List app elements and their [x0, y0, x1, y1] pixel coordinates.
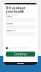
staticText: Date of birth [6, 23, 13, 25]
button[interactable]: Continue [6, 52, 35, 57]
staticText: Full name [6, 16, 12, 18]
staticText: Continue [13, 52, 27, 56]
staticText: It only takes a minute. [6, 14, 18, 16]
staticText: Email address [6, 30, 16, 32]
staticText: Tell us about your health [6, 6, 25, 14]
staticText: I agree to the Terms of Service [9, 47, 29, 49]
